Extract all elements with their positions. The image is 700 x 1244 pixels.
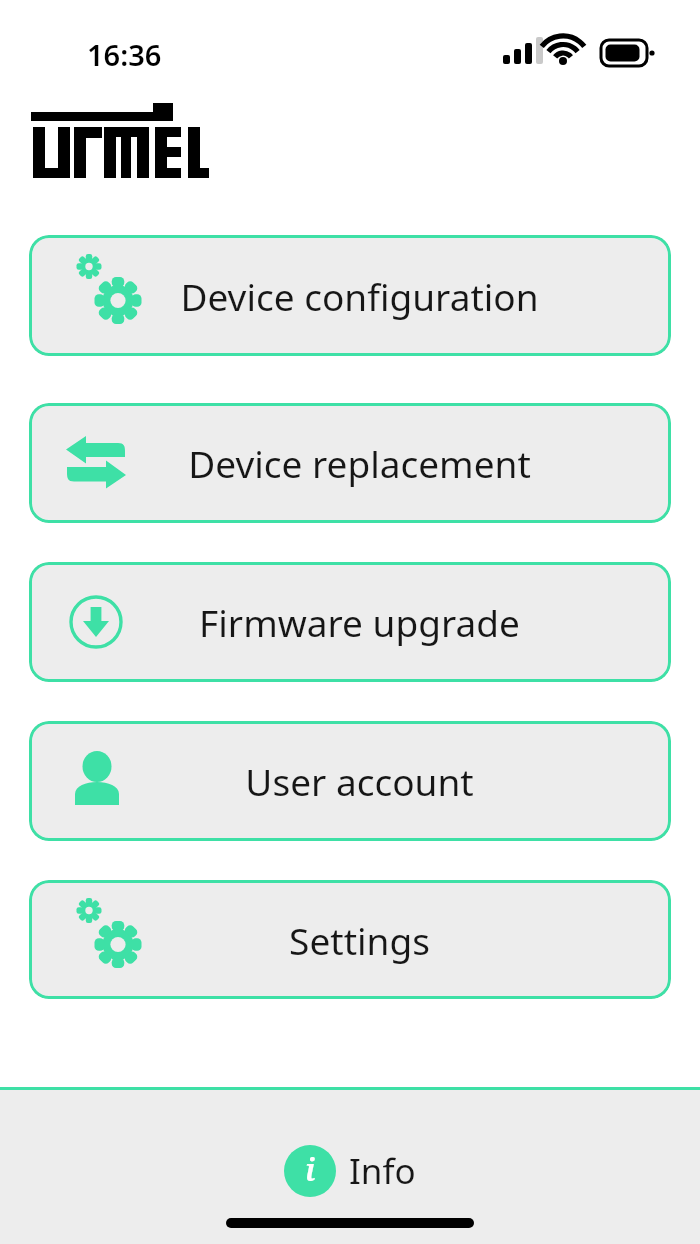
staticText: Settings xyxy=(289,915,430,965)
staticText: Device replacement xyxy=(188,438,531,488)
button[interactable]: Device replacement xyxy=(29,403,671,523)
staticText: User account xyxy=(245,756,474,806)
staticText: Device configuration xyxy=(180,271,539,321)
staticText: Info xyxy=(349,1147,416,1195)
button[interactable]: i xyxy=(276,1142,424,1200)
staticText: i xyxy=(305,1148,316,1190)
button[interactable]: User account xyxy=(29,721,671,841)
button[interactable]: Firmware upgrade xyxy=(29,562,671,682)
staticText: 16:36 xyxy=(87,35,162,74)
button[interactable]: Settings xyxy=(29,880,671,999)
button[interactable]: Device configuration xyxy=(29,235,671,356)
staticText: Firmware upgrade xyxy=(199,597,520,647)
